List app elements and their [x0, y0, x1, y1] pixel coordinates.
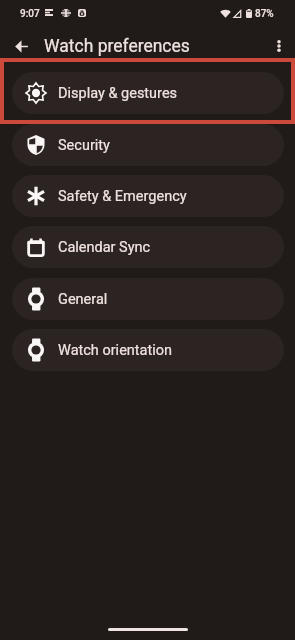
staticText: Display & gestures [58, 85, 178, 102]
button[interactable]: Security [12, 124, 284, 166]
button[interactable]: Display & gestures [12, 72, 284, 114]
button[interactable]: Watch orientation [12, 329, 284, 371]
staticText: Watch preferences [44, 36, 190, 57]
button[interactable]: More options [263, 30, 295, 62]
staticText: Watch orientation [58, 342, 173, 359]
staticText: Safety & Emergency [58, 188, 187, 205]
button[interactable]: General [12, 278, 284, 320]
staticText: General [58, 291, 108, 308]
staticText: 87% [255, 8, 274, 20]
staticText: Security [58, 137, 110, 154]
button[interactable]: Calendar Sync [12, 226, 284, 268]
button[interactable]: Safety & Emergency [12, 175, 284, 217]
staticText: 9:07 [20, 8, 40, 20]
button[interactable]: Navigate up [5, 30, 37, 62]
staticText: Calendar Sync [58, 239, 151, 256]
